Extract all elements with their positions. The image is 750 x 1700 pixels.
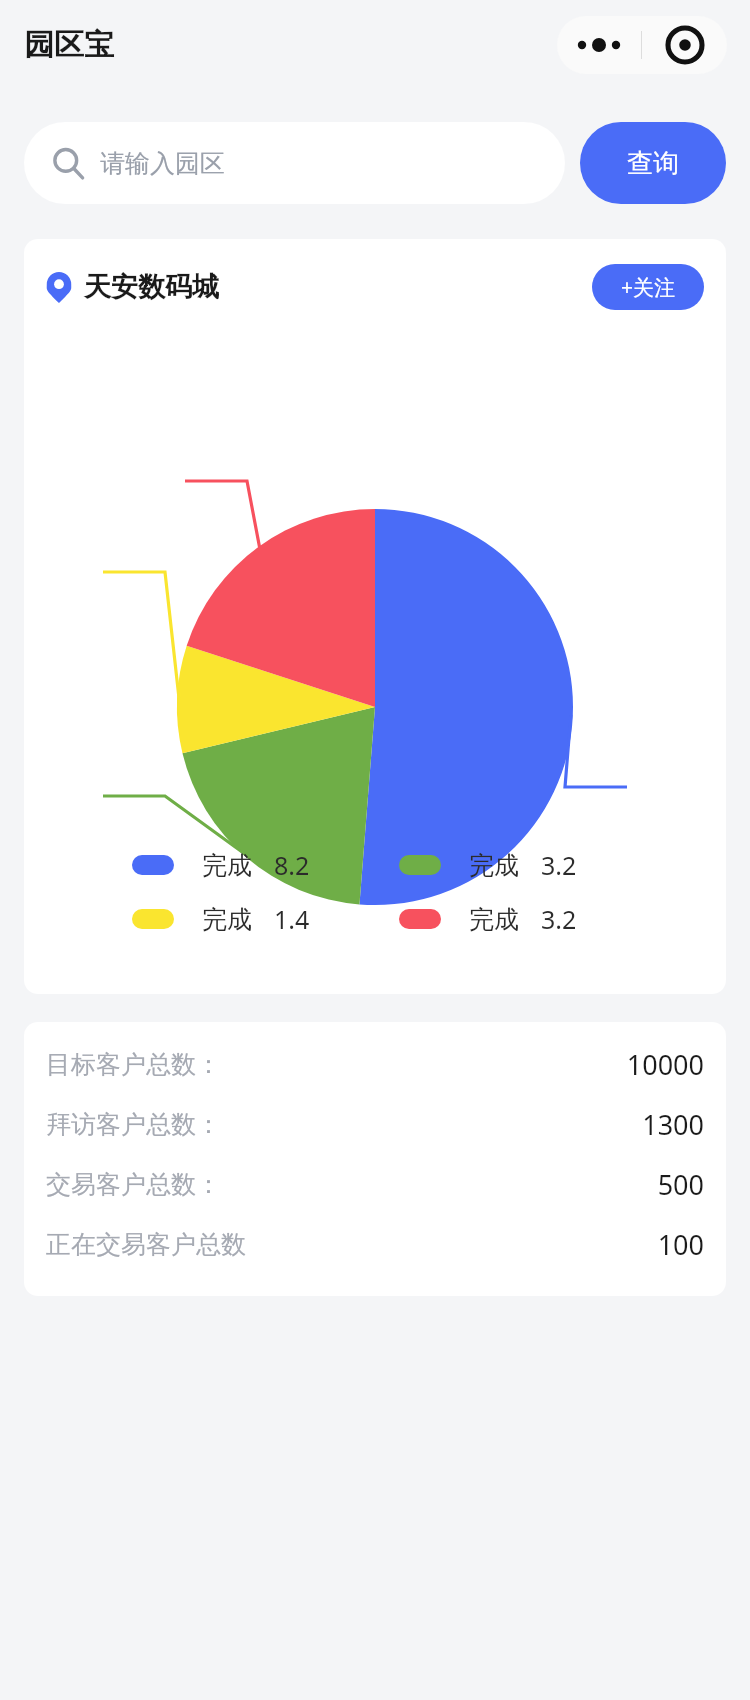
staticText: 完成 (469, 850, 519, 881)
button[interactable]: More (557, 16, 641, 74)
button[interactable]: 正在交易客户总数 (24, 1214, 726, 1274)
button[interactable]: 拜访客户总数： (24, 1094, 726, 1154)
button[interactable]: +关注 (592, 264, 704, 310)
staticText: 1.4 (274, 902, 310, 936)
staticText: 正在交易客户总数 (46, 1229, 246, 1260)
staticText: 1300 (642, 1106, 704, 1143)
button[interactable]: 完成 (399, 902, 666, 936)
staticText: 8.2 (274, 848, 310, 882)
button[interactable]: 查询 (580, 122, 726, 204)
staticText: 完成 (202, 904, 252, 935)
staticText: 查询 (627, 147, 679, 180)
button[interactable]: 完成 (132, 848, 399, 882)
staticText: 目标客户总数： (46, 1049, 221, 1080)
staticText: 拜访客户总数： (46, 1109, 221, 1140)
button[interactable]: 请输入园区 (24, 122, 565, 204)
staticText: 天安数码城 (84, 270, 219, 304)
staticText: 请输入园区 (100, 148, 225, 179)
staticText: +关注 (621, 273, 676, 302)
button[interactable]: 目标客户总数： (24, 1034, 726, 1094)
staticText: 10000 (626, 1046, 704, 1083)
button[interactable]: 交易客户总数： (24, 1154, 726, 1214)
staticText: 园区宝 (24, 26, 114, 64)
button[interactable]: 完成 (399, 848, 666, 882)
staticText: 完成 (469, 904, 519, 935)
button[interactable]: 完成 (132, 902, 399, 936)
staticText: 500 (657, 1166, 704, 1203)
staticText: 交易客户总数： (46, 1169, 221, 1200)
staticText: 3.2 (541, 848, 577, 882)
staticText: 100 (657, 1226, 704, 1263)
button[interactable]: Close (642, 16, 727, 74)
staticText: 3.2 (541, 902, 577, 936)
staticText: 完成 (202, 850, 252, 881)
